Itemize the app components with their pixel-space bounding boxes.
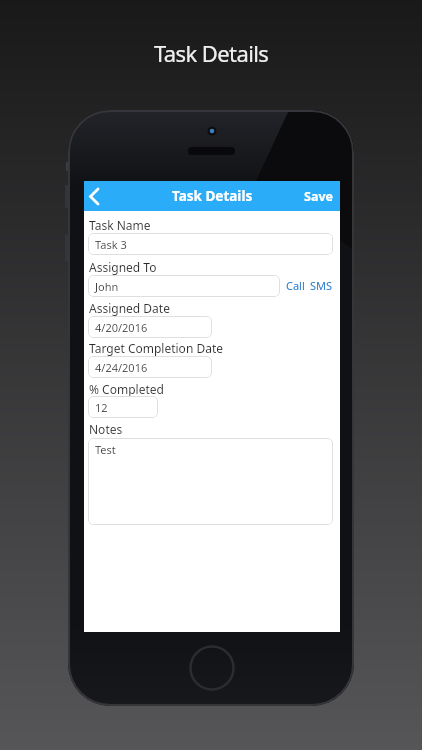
staticText: % Completed: [89, 381, 164, 397]
button[interactable]: Call: [286, 278, 305, 293]
staticText: SMS: [310, 278, 333, 293]
staticText: Task Name: [89, 217, 151, 233]
staticText: 4/24/2016: [95, 360, 148, 375]
staticText: Task Details: [172, 187, 253, 205]
staticText: Call: [286, 278, 305, 293]
button[interactable]: 4/20/2016: [88, 316, 212, 338]
staticText: Target Completion Date: [89, 340, 224, 356]
staticText: 12: [95, 400, 108, 415]
staticText: Task 3: [95, 237, 127, 252]
staticText: Assigned Date: [89, 300, 170, 316]
button[interactable]: Task 3: [88, 233, 333, 255]
staticText: Save: [304, 188, 333, 205]
button[interactable]: SMS: [310, 278, 333, 293]
button[interactable]: 12: [88, 396, 158, 418]
staticText: Assigned To: [89, 259, 157, 275]
button[interactable]: Test: [88, 438, 333, 525]
staticText: Task Details: [154, 38, 269, 68]
staticText: Test: [95, 442, 116, 457]
staticText: 4/20/2016: [95, 320, 148, 335]
button[interactable]: [190, 646, 234, 690]
button[interactable]: 4/24/2016: [88, 356, 212, 378]
staticText: Notes: [89, 421, 123, 437]
button[interactable]: Save: [304, 188, 333, 205]
button[interactable]: John: [88, 275, 280, 297]
button[interactable]: [84, 181, 110, 211]
staticText: John: [95, 279, 119, 294]
